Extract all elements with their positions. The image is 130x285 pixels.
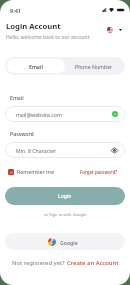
other: Select language xyxy=(107,27,113,33)
staticText: Password xyxy=(10,130,34,137)
button[interactable]: Create an Account xyxy=(67,259,119,267)
staticText: or Sign in with Google xyxy=(44,212,87,218)
staticText: Min. 8 Character xyxy=(16,147,111,154)
staticText: Not registered yet? xyxy=(12,259,67,267)
button[interactable]: Login xyxy=(5,187,125,205)
button[interactable]: Select language xyxy=(105,25,122,35)
staticText: Hello, welcome back to our account xyxy=(6,34,90,41)
button[interactable]: Forget password? xyxy=(80,169,118,175)
staticText: Phone Number xyxy=(75,63,113,70)
button[interactable]: Google xyxy=(5,233,125,250)
staticText: Login xyxy=(58,193,72,200)
staticText: Email xyxy=(29,63,43,70)
button[interactable]: Remember me xyxy=(8,168,54,175)
staticText: Google xyxy=(60,239,78,246)
other: Show password xyxy=(111,147,118,154)
staticText: Login Account xyxy=(6,21,61,31)
staticText: Remember me xyxy=(17,168,54,175)
button[interactable]: Min. 8 Character xyxy=(5,142,125,158)
staticText: Email xyxy=(10,94,24,101)
button[interactable]: Email xyxy=(7,59,65,73)
button[interactable]: mail@website.com xyxy=(5,106,125,122)
button[interactable]: Phone Number xyxy=(65,59,123,73)
staticText: 9:41 xyxy=(10,7,21,14)
staticText: mail@website.com xyxy=(16,111,112,118)
